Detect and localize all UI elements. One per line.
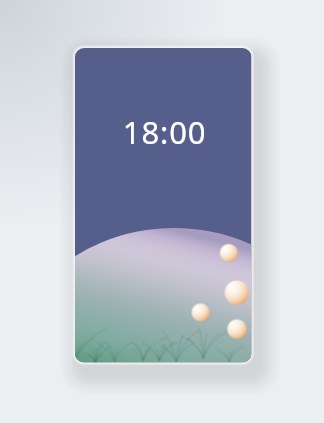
button[interactable]	[0, 0, 324, 423]
